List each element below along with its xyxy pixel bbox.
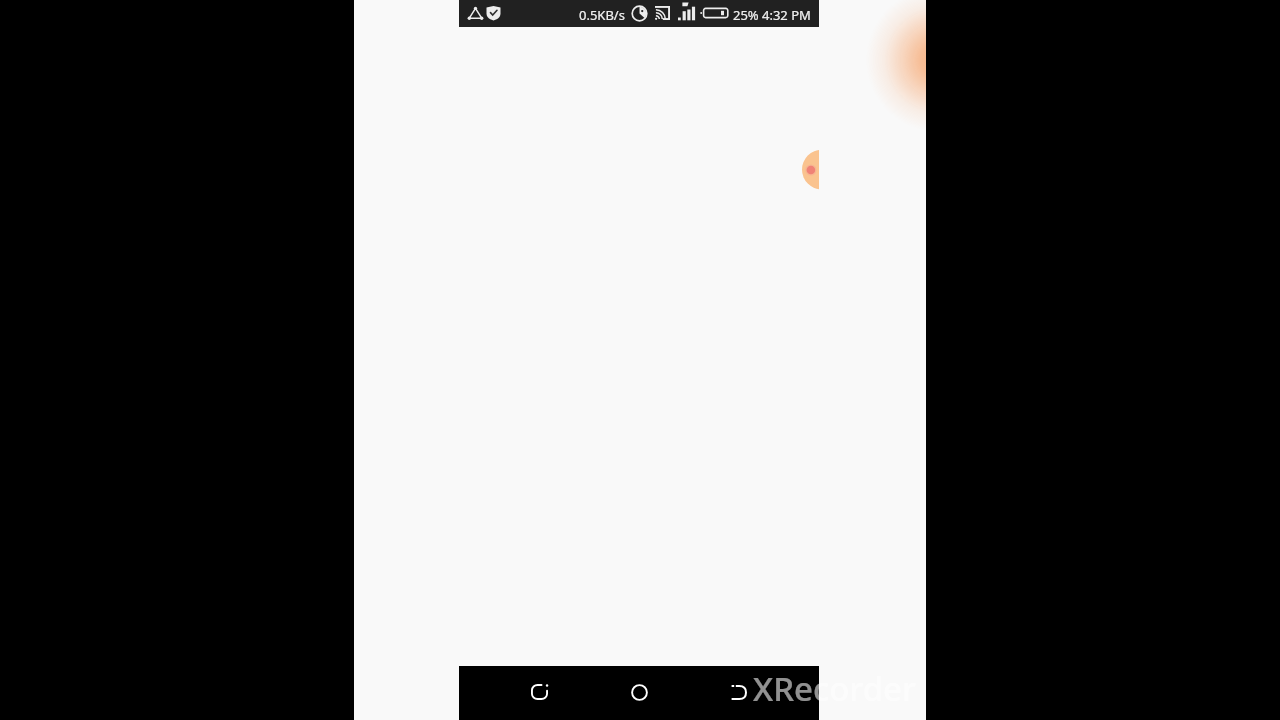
button[interactable]: Back xyxy=(713,666,765,718)
button[interactable]: Screen recorder floating button xyxy=(802,150,819,190)
staticText: 0.5KB/s xyxy=(579,6,625,24)
staticText: 25% xyxy=(733,6,759,24)
staticText: 4:32 PM xyxy=(762,6,811,24)
button[interactable]: Home xyxy=(613,666,665,718)
staticText: XRecorder xyxy=(753,666,916,711)
button[interactable]: Recent apps xyxy=(513,666,565,718)
